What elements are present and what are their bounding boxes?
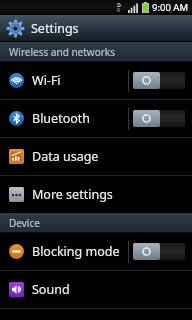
staticText: Device bbox=[9, 216, 40, 230]
button[interactable]: Toggle bbox=[133, 110, 185, 127]
staticText: Wireless and networks bbox=[9, 45, 115, 59]
button[interactable]: Toggle bbox=[133, 72, 185, 89]
staticText: Blocking mode bbox=[32, 243, 128, 260]
button[interactable]: Sound bbox=[0, 271, 192, 308]
button[interactable]: Toggle bbox=[133, 243, 185, 260]
staticText: More settings bbox=[32, 186, 185, 203]
button[interactable]: Bluetooth bbox=[0, 100, 192, 137]
staticText: Bluetooth bbox=[32, 110, 128, 127]
staticText: Data usage bbox=[32, 148, 185, 165]
staticText: 9:00 AM bbox=[152, 1, 189, 14]
staticText: Wi-Fi bbox=[32, 72, 128, 89]
button[interactable]: Data usage bbox=[0, 138, 192, 175]
button[interactable]: Wi-Fi bbox=[0, 62, 192, 99]
button[interactable]: Blocking mode bbox=[0, 233, 192, 270]
staticText: Settings bbox=[31, 20, 79, 37]
staticText: Sound bbox=[32, 281, 185, 298]
button[interactable]: More settings bbox=[0, 176, 192, 213]
